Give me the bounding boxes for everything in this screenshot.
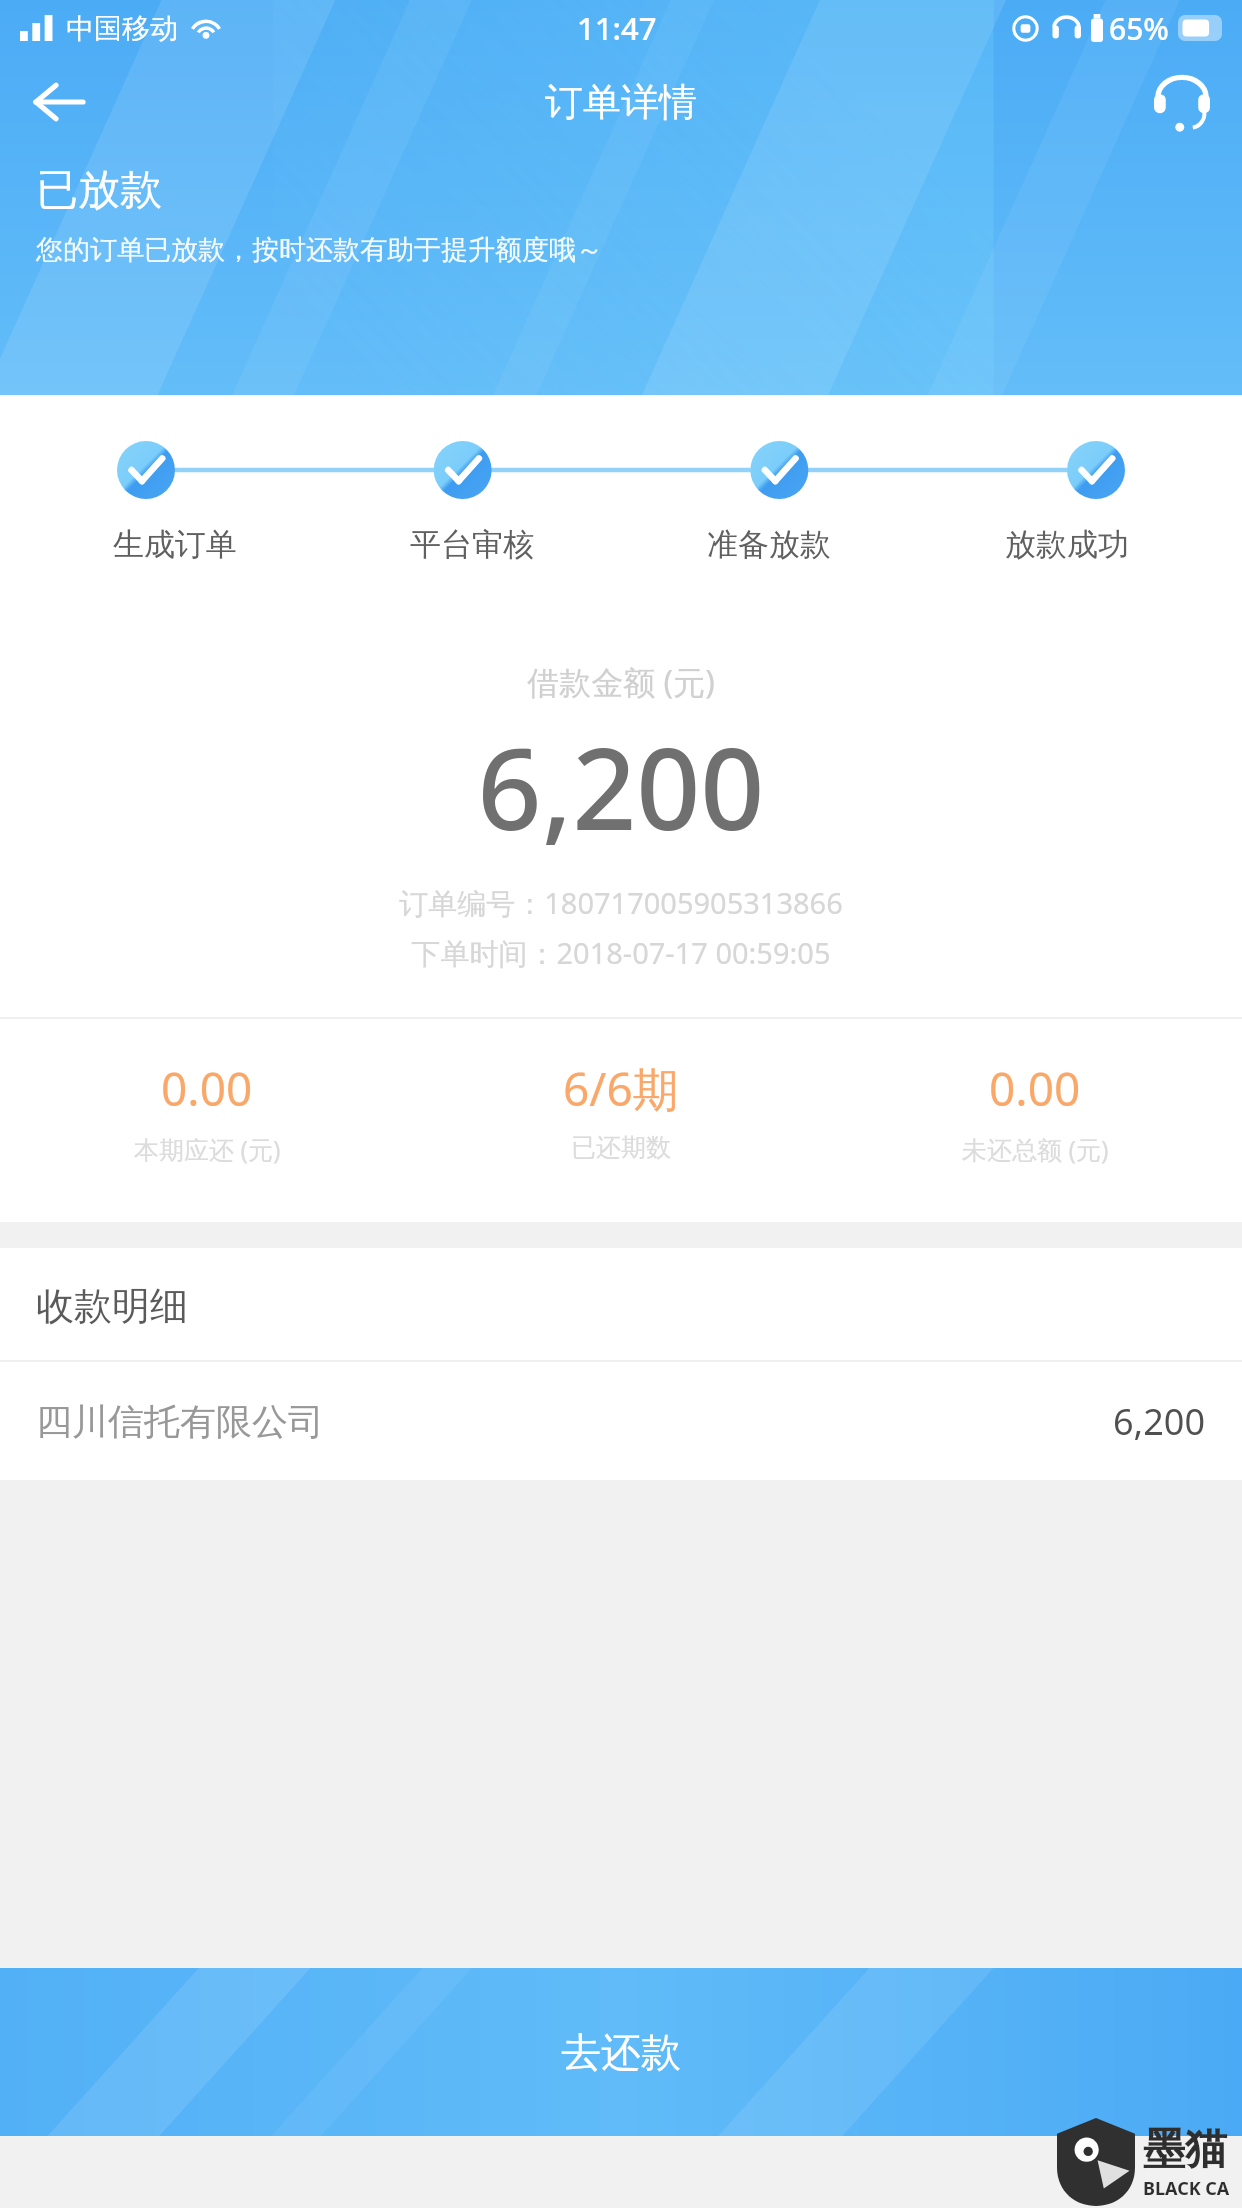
staticText: 6/6期	[563, 1057, 679, 1120]
staticText: 您的订单已放款，按时还款有助于提升额度哦～	[36, 233, 603, 267]
button[interactable]: 去还款	[0, 1968, 1242, 2136]
button[interactable]: Back	[12, 56, 104, 148]
staticText: 6,200	[0, 710, 1242, 863]
staticText: 平台审核	[410, 525, 534, 564]
staticText: 放款成功	[1005, 525, 1129, 564]
staticText: 订单详情	[545, 78, 697, 126]
staticText: 65%	[1109, 8, 1169, 49]
staticText: 墨猫	[1143, 2123, 1227, 2176]
staticText: 借款金额 (元)	[0, 660, 1242, 704]
button[interactable]: Customer service	[1136, 56, 1228, 148]
staticText: 已放款	[36, 164, 162, 217]
button[interactable]: 四川信托有限公司	[0, 1362, 1242, 1480]
button[interactable]: 6/6期	[414, 1057, 828, 1163]
staticText: 去还款	[561, 2027, 681, 2077]
staticText: 准备放款	[707, 525, 831, 564]
button[interactable]: 0.00	[0, 1057, 414, 1166]
staticText: 收款明细	[36, 1282, 188, 1330]
staticText: 四川信托有限公司	[36, 1399, 324, 1444]
staticText: 11:47	[577, 7, 657, 49]
button[interactable]: 0.00	[828, 1057, 1242, 1166]
staticText: 6,200	[1113, 1397, 1206, 1446]
staticText: BLACK CA	[1143, 2176, 1230, 2201]
staticText: 生成订单	[113, 525, 237, 564]
staticText: 未还总额 (元)	[962, 1132, 1109, 1166]
staticText: 订单编号：180717005905313866	[0, 883, 1242, 923]
staticText: 0.00	[161, 1057, 253, 1120]
staticText: 0.00	[989, 1057, 1081, 1120]
staticText: 已还期数	[571, 1132, 671, 1163]
staticText: 中国移动	[66, 11, 178, 46]
staticText: 下单时间：2018-07-17 00:59:05	[0, 933, 1242, 973]
staticText: 本期应还 (元)	[134, 1132, 281, 1166]
